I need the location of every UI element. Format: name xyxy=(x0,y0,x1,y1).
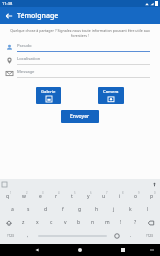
staticText: c xyxy=(50,219,53,226)
button[interactable]: Pseudo xyxy=(0,43,160,52)
button[interactable]: ?123 xyxy=(138,229,160,242)
staticText: Galerie xyxy=(41,89,56,95)
button[interactable]: ! xyxy=(114,216,128,229)
button[interactable]: c xyxy=(44,216,58,229)
button[interactable]: Galerie xyxy=(36,87,61,104)
staticText: w xyxy=(22,193,26,200)
staticText: Quelque chose à partager ? Signalez-nous… xyxy=(10,28,150,38)
staticText: 5 xyxy=(74,191,76,195)
button[interactable]: j xyxy=(105,203,122,216)
staticText: 7 xyxy=(106,191,108,195)
button[interactable]: d xyxy=(37,203,54,216)
staticText: 1 xyxy=(10,191,12,195)
button[interactable]: m xyxy=(100,216,114,229)
button[interactable]: l xyxy=(139,203,156,216)
button[interactable]: r xyxy=(48,190,64,203)
staticText: 2 xyxy=(26,191,28,195)
button[interactable]: q xyxy=(0,190,16,203)
staticText: 4 xyxy=(58,191,60,195)
staticText: Envoyer xyxy=(70,113,90,120)
button[interactable]: , xyxy=(21,229,35,242)
staticText: l xyxy=(147,206,149,213)
button[interactable]: n xyxy=(86,216,100,229)
staticText: o xyxy=(134,193,138,200)
staticText: e xyxy=(39,193,42,200)
staticText: 6 xyxy=(90,191,92,195)
button[interactable]: o xyxy=(128,190,144,203)
button[interactable]: t xyxy=(64,190,80,203)
staticText: ? xyxy=(134,219,137,226)
button[interactable]: Emoji xyxy=(110,229,124,242)
button[interactable]: Retour xyxy=(0,7,17,24)
staticText: Localisation xyxy=(17,56,41,62)
staticText: ! xyxy=(120,219,122,226)
button[interactable]: ? xyxy=(128,216,142,229)
staticText: a xyxy=(11,206,14,213)
staticText: ?123 xyxy=(7,234,14,238)
staticText: 8 xyxy=(122,191,124,195)
staticText: Pseudo xyxy=(17,43,32,49)
staticText: ?123 xyxy=(146,234,153,238)
button[interactable]: g xyxy=(71,203,88,216)
button[interactable]: h xyxy=(88,203,105,216)
staticText: r xyxy=(55,193,58,200)
button[interactable]: ?123 xyxy=(0,229,21,242)
staticText: i xyxy=(119,193,121,200)
button[interactable]: . xyxy=(124,229,138,242)
button[interactable]: Retour xyxy=(31,244,43,256)
staticText: . xyxy=(130,232,132,239)
button[interactable]: Message xyxy=(0,69,160,78)
button[interactable]: b xyxy=(72,216,86,229)
button[interactable]: x xyxy=(30,216,44,229)
staticText: j xyxy=(113,206,115,213)
staticText: q xyxy=(6,193,10,200)
staticText: h xyxy=(95,206,99,213)
button[interactable]: i xyxy=(112,190,128,203)
staticText: d xyxy=(44,206,48,213)
staticText: k xyxy=(129,206,132,213)
button[interactable]: y xyxy=(80,190,96,203)
staticText: Message xyxy=(17,69,35,75)
staticText: 3 xyxy=(42,191,44,195)
button[interactable]: Camera xyxy=(98,87,124,104)
staticText: u xyxy=(102,193,106,200)
button[interactable]: Récents xyxy=(117,244,129,256)
button[interactable]: z xyxy=(17,216,30,229)
button[interactable]: k xyxy=(122,203,139,216)
staticText: y xyxy=(87,193,90,200)
staticText: , xyxy=(27,232,29,239)
staticText: 11:38 xyxy=(2,1,13,6)
staticText: s xyxy=(27,206,30,213)
button[interactable]: w xyxy=(16,190,32,203)
staticText: f xyxy=(62,206,64,213)
button[interactable]: Envoyer xyxy=(61,110,99,123)
staticText: n xyxy=(91,219,95,226)
button[interactable]: a xyxy=(4,203,20,216)
staticText: m xyxy=(105,219,110,226)
button[interactable]: Effacer xyxy=(142,216,160,229)
button[interactable]: u xyxy=(96,190,112,203)
button[interactable]: Localisation xyxy=(0,56,160,65)
button[interactable]: Accueil xyxy=(74,244,86,256)
staticText: Témoignage xyxy=(17,11,59,21)
staticText: p xyxy=(150,193,154,200)
button[interactable]: Espace xyxy=(35,229,110,242)
button[interactable]: v xyxy=(58,216,72,229)
button[interactable]: f xyxy=(54,203,71,216)
staticText: x xyxy=(36,219,39,226)
staticText: b xyxy=(77,219,81,226)
staticText: 0 xyxy=(154,191,156,195)
staticText: t xyxy=(71,193,73,200)
button[interactable]: e xyxy=(32,190,48,203)
staticText: 9 xyxy=(138,191,140,195)
staticText: Camera xyxy=(103,89,119,95)
button[interactable]: p xyxy=(144,190,160,203)
staticText: z xyxy=(22,219,25,226)
button[interactable]: Majuscule xyxy=(0,216,17,229)
staticText: v xyxy=(64,219,67,226)
button[interactable]: s xyxy=(20,203,37,216)
staticText: g xyxy=(78,206,82,213)
